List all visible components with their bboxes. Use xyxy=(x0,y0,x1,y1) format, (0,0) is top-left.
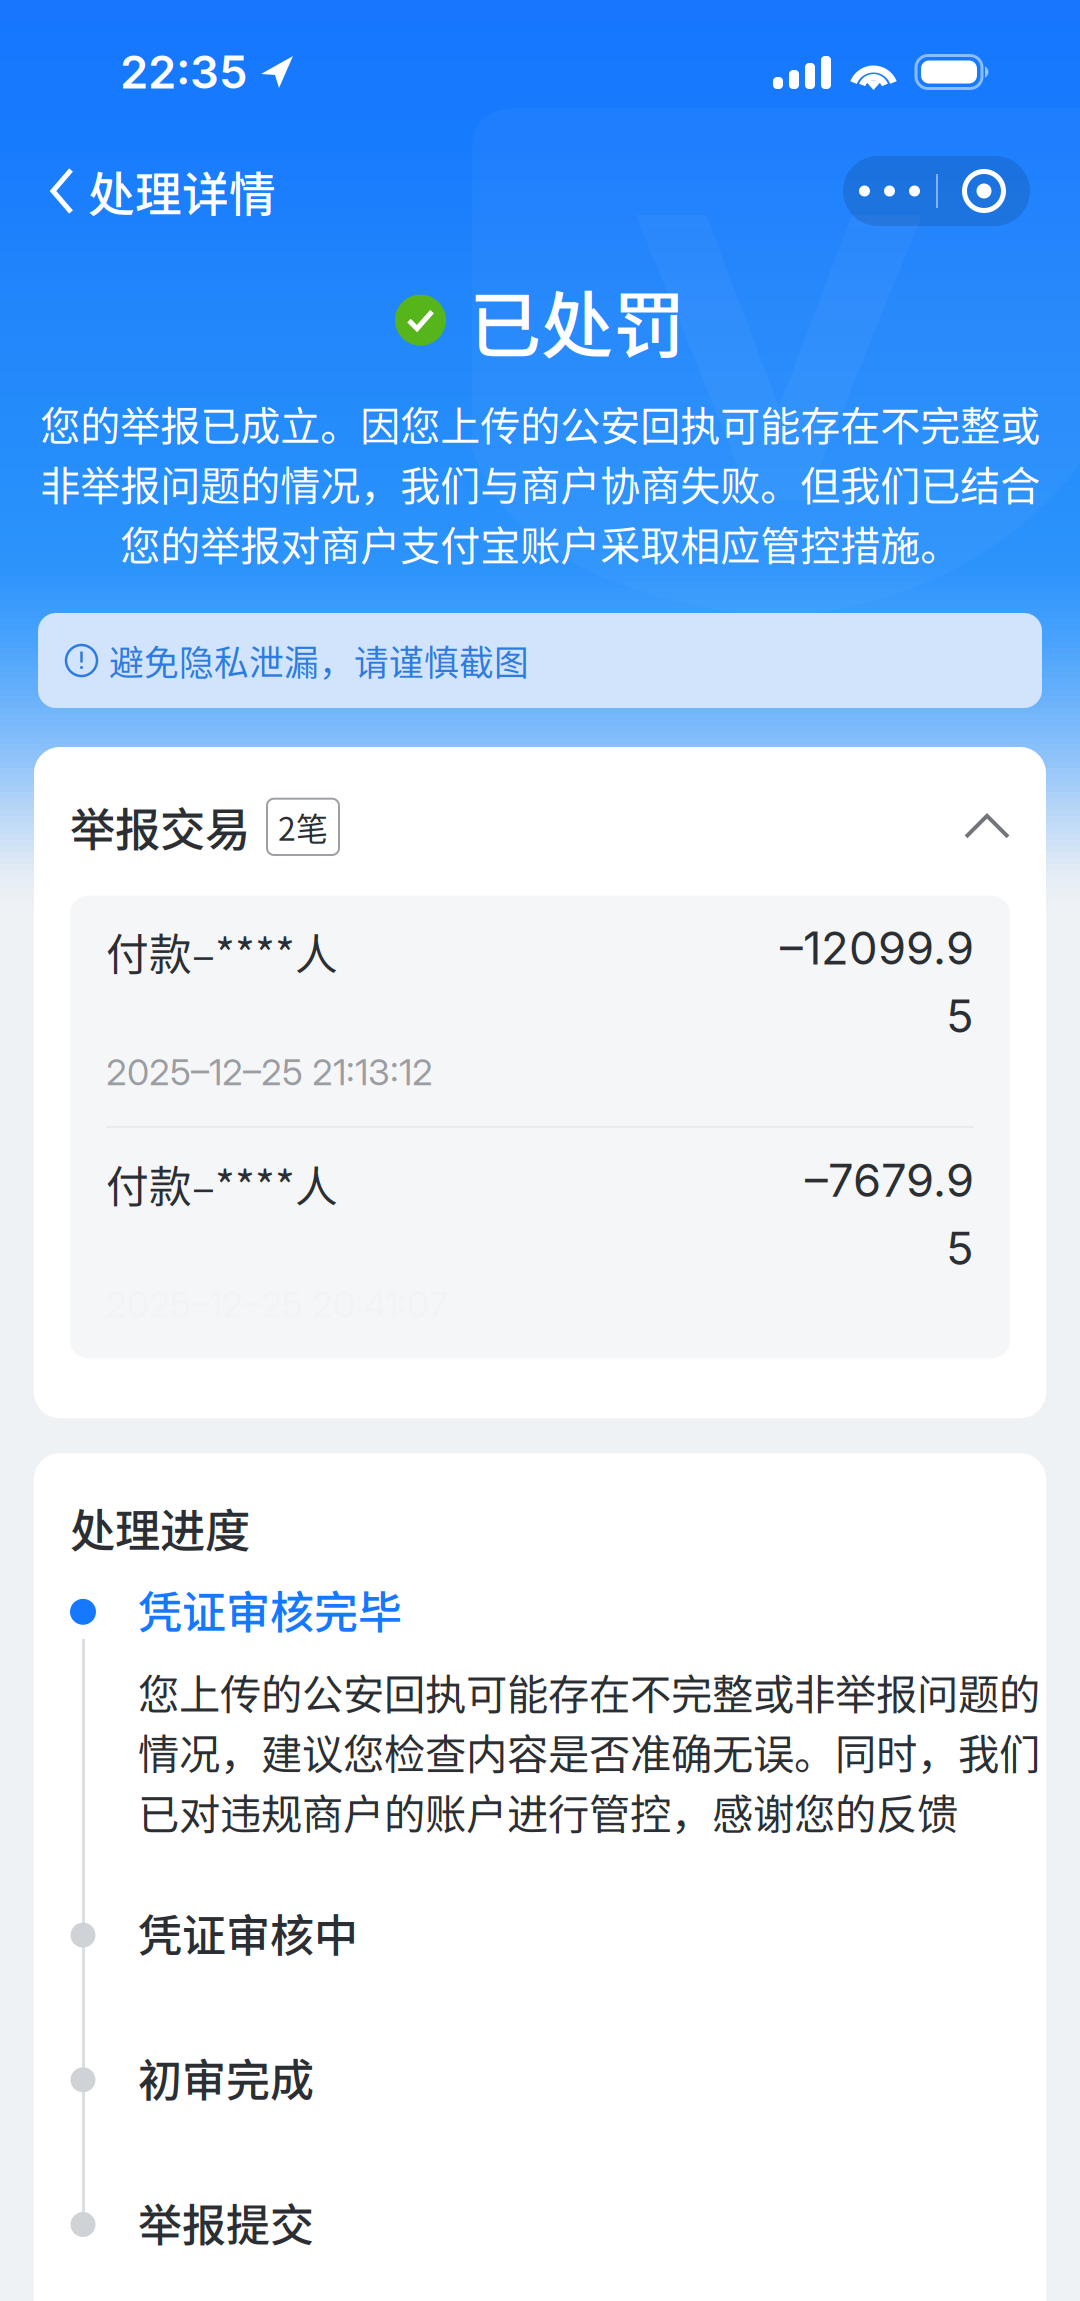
staticText: 凭证审核完毕 xyxy=(138,1578,402,1641)
staticText: 已处罚 xyxy=(469,268,685,372)
staticText: 2025–12–25 21:13:12 xyxy=(106,1050,433,1094)
staticText: 处理进度 xyxy=(70,1495,250,1561)
staticText: 您的举报已成立。因您上传的公安回执可能存在不完整或非举报问题的情况，我们与商户协… xyxy=(40,394,1040,572)
staticText: 22:35 xyxy=(120,45,248,99)
staticText: 初审完成 xyxy=(138,2046,314,2109)
staticText: 避免隐私泄漏，请谨慎截图 xyxy=(109,635,529,686)
button[interactable]: 处理详情 xyxy=(0,143,296,239)
staticText: 凭证审核中 xyxy=(138,1901,358,1965)
staticText: 付款–****人 xyxy=(106,1153,338,1215)
button[interactable]: 举报交易 xyxy=(34,747,1046,860)
staticText: 5 xyxy=(946,988,974,1043)
staticText: 举报提交 xyxy=(138,2190,314,2254)
button[interactable]: More xyxy=(843,156,936,226)
staticText: 举报交易 xyxy=(70,794,250,860)
staticText: 2笔 xyxy=(278,804,328,850)
staticText: 处理详情 xyxy=(88,157,276,225)
staticText: 5 xyxy=(946,1221,974,1276)
button[interactable]: Close xyxy=(938,156,1030,226)
staticText: –7679.9 xyxy=(805,1153,974,1208)
staticText: 您上传的公安回执可能存在不完整或非举报问题的情况，建议您检查内容是否准确无误。同… xyxy=(138,1661,1040,1841)
staticText: –12099.9 xyxy=(780,921,974,976)
staticText: 付款–****人 xyxy=(106,921,338,982)
